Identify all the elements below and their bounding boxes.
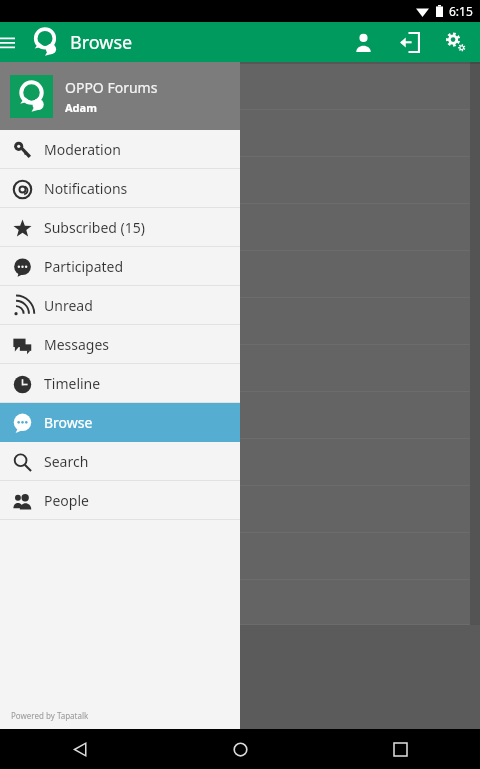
staticText: Participated [44, 257, 124, 276]
button[interactable]: People [0, 481, 240, 520]
button[interactable]: OPPO Forums [0, 62, 240, 130]
staticText: Adam [65, 100, 97, 115]
button[interactable]: Unread [0, 286, 240, 325]
staticText: Messages [44, 335, 110, 354]
button[interactable]: Account [340, 22, 386, 62]
button[interactable]: Moderation [0, 130, 240, 169]
staticText: Browse [70, 30, 133, 55]
staticText: Powered by Tapatalk [11, 710, 89, 721]
button[interactable]: Subscribed (15) [0, 208, 240, 247]
staticText: Timeline [44, 374, 101, 393]
button[interactable]: Participated [0, 247, 240, 286]
button[interactable]: Log out [386, 22, 432, 62]
staticText: OPPO Forums [65, 78, 158, 97]
button[interactable]: Settings [432, 22, 478, 62]
button[interactable]: Search [0, 442, 240, 481]
button[interactable]: Home [160, 729, 320, 769]
button[interactable]: Messages [0, 325, 240, 364]
staticText: Moderation [44, 140, 121, 159]
button[interactable]: Recent apps [320, 729, 480, 769]
staticText: Search [44, 452, 89, 471]
button[interactable]: Back [0, 729, 160, 769]
staticText: People [44, 491, 89, 510]
button[interactable]: Timeline [0, 364, 240, 403]
button[interactable]: Notifications [0, 169, 240, 208]
staticText: 6:15 [449, 3, 473, 19]
button[interactable]: Open navigation drawer [0, 29, 20, 55]
staticText: Notifications [44, 179, 128, 198]
staticText: Unread [44, 296, 93, 315]
staticText: Subscribed (15) [44, 218, 145, 237]
staticText: Browse [44, 413, 93, 432]
button[interactable]: Browse [0, 403, 240, 442]
